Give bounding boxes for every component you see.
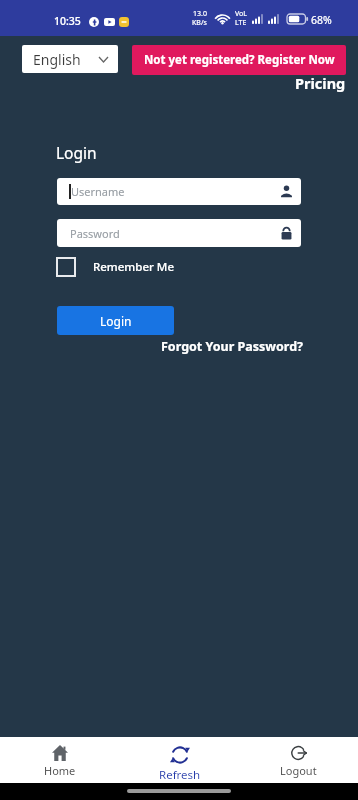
staticText: Username bbox=[71, 184, 125, 199]
staticText: KB/s bbox=[192, 18, 207, 28]
staticText: Logout bbox=[280, 763, 317, 778]
staticText: Remember Me bbox=[93, 259, 174, 275]
button[interactable]: Username bbox=[57, 178, 301, 205]
staticText: Login bbox=[100, 313, 132, 329]
button[interactable]: Password bbox=[57, 219, 301, 247]
button[interactable]: Forgot Your Password? bbox=[0, 338, 304, 355]
staticText: Login bbox=[56, 142, 97, 163]
button[interactable]: English bbox=[22, 45, 118, 73]
staticText: LTE bbox=[235, 18, 247, 28]
button[interactable]: Logout bbox=[239, 737, 358, 783]
staticText: 13.0 bbox=[193, 9, 207, 19]
button[interactable]: Home bbox=[0, 737, 120, 783]
staticText: Refresh bbox=[159, 767, 201, 783]
staticText: 68% bbox=[311, 13, 332, 27]
staticText: Home bbox=[44, 763, 76, 778]
button[interactable]: Pricing bbox=[0, 73, 346, 93]
button[interactable]: Remember Me bbox=[56, 257, 174, 277]
staticText: Password bbox=[70, 226, 120, 241]
staticText: English bbox=[33, 50, 81, 69]
staticText: Forgot Your Password? bbox=[161, 338, 304, 355]
staticText: VoL bbox=[235, 9, 247, 19]
staticText: Pricing bbox=[295, 73, 346, 93]
staticText: 10:35 bbox=[54, 14, 81, 28]
button[interactable]: Refresh bbox=[120, 737, 239, 783]
staticText: Not yet registered? Register Now bbox=[144, 52, 335, 68]
button[interactable]: Not yet registered? Register Now bbox=[132, 45, 346, 75]
button[interactable]: Login bbox=[57, 306, 174, 335]
